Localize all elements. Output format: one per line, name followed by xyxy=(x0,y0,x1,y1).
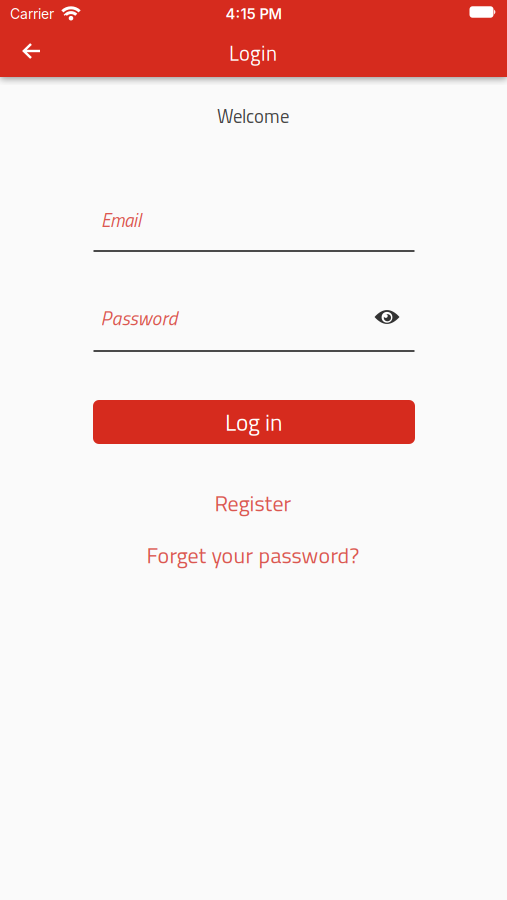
staticText: Log in xyxy=(225,404,283,440)
button[interactable]: Register xyxy=(214,486,291,520)
button[interactable]: Email xyxy=(93,199,415,252)
staticText: Carrier xyxy=(10,5,54,22)
button[interactable]: Show password xyxy=(369,301,405,333)
staticText: 4:15 PM xyxy=(225,5,282,23)
staticText: Forget your password? xyxy=(146,538,359,572)
button[interactable]: Forget your password? xyxy=(146,538,359,572)
staticText: Register xyxy=(214,486,291,520)
button[interactable]: Password xyxy=(93,299,415,352)
staticText: Password xyxy=(100,303,177,333)
staticText: Login xyxy=(229,37,277,69)
staticText: Welcome xyxy=(217,102,289,130)
button[interactable]: Log in xyxy=(93,400,415,444)
button[interactable]: Back xyxy=(8,29,54,73)
staticText: Email xyxy=(101,206,141,234)
